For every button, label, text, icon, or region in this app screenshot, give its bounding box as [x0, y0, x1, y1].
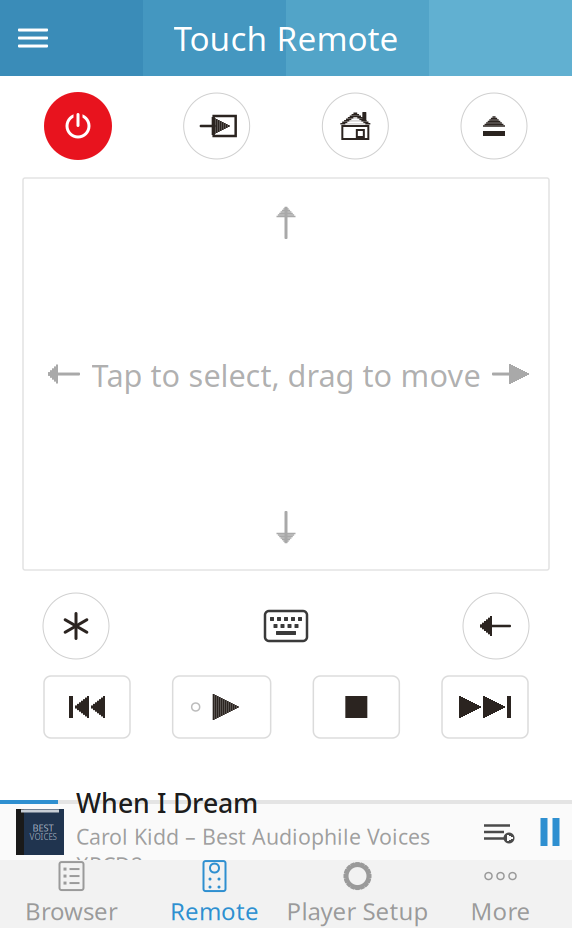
staticText: VOICES: [29, 832, 56, 842]
staticText: Player Setup: [286, 895, 428, 927]
button[interactable]: More: [429, 860, 572, 928]
staticText: Carol Kidd – Best Audiophile Voices XRCD…: [76, 822, 430, 879]
staticText: Tap to select, drag to move: [91, 355, 480, 395]
button[interactable]: Browser: [0, 860, 143, 928]
button[interactable]: Back: [462, 592, 530, 660]
staticText: Browser: [25, 895, 118, 927]
button[interactable]: Eject: [460, 92, 528, 160]
staticText: Remote: [170, 895, 259, 927]
button[interactable]: Home: [321, 92, 389, 160]
button[interactable]: Input: [183, 92, 251, 160]
button[interactable]: Player Setup: [286, 860, 429, 928]
staticText: BEST: [32, 822, 53, 834]
button[interactable]: Keyboard: [252, 592, 320, 660]
button[interactable]: Stop: [313, 676, 399, 738]
button[interactable]: Now playing, When I Dream: [0, 804, 572, 860]
button[interactable]: Menu: [6, 11, 60, 65]
button[interactable]: Touchpad, tap to select, drag to move: [23, 178, 549, 570]
staticText: When I Dream: [76, 785, 258, 820]
button[interactable]: Remote: [143, 860, 286, 928]
staticText: Touch Remote: [173, 16, 398, 60]
staticText: More: [470, 895, 530, 927]
button[interactable]: Play: [173, 676, 271, 738]
button[interactable]: Previous: [44, 676, 130, 738]
button[interactable]: Next: [442, 676, 528, 738]
button[interactable]: Options: [42, 592, 110, 660]
button[interactable]: Power: [44, 92, 112, 160]
